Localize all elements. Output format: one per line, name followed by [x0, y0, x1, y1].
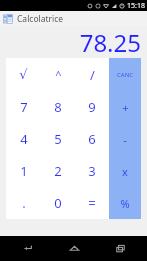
button[interactable]: ^	[41, 58, 75, 91]
staticText: 3	[88, 162, 96, 180]
staticText: 7	[20, 98, 28, 116]
button[interactable]: Recent apps	[100, 236, 140, 261]
button[interactable]: √	[6, 58, 41, 91]
staticText: 8	[54, 98, 62, 116]
button[interactable]: 6	[75, 123, 109, 155]
staticText: x	[122, 164, 128, 179]
staticText: =	[88, 194, 96, 212]
staticText: /	[90, 66, 95, 84]
button[interactable]: %	[109, 187, 141, 219]
button[interactable]: =	[75, 187, 109, 219]
button[interactable]: 9	[75, 91, 109, 123]
button[interactable]: 0	[41, 187, 75, 219]
button[interactable]: CANC	[109, 58, 141, 91]
button[interactable]: 7	[6, 91, 41, 123]
staticText: 2	[54, 162, 62, 180]
button[interactable]: x	[109, 155, 141, 187]
button[interactable]: 3	[75, 155, 109, 187]
staticText: ^	[55, 67, 62, 82]
button[interactable]: +	[109, 91, 141, 123]
staticText: CANC	[117, 71, 133, 79]
button[interactable]: Home	[54, 236, 94, 261]
staticText: 15:18	[127, 1, 145, 11]
button[interactable]: 1	[6, 155, 41, 187]
button[interactable]: 5	[41, 123, 75, 155]
staticText: 9	[88, 98, 96, 116]
staticText: %	[120, 196, 130, 211]
button[interactable]: -	[109, 123, 141, 155]
button[interactable]: /	[75, 58, 109, 91]
staticText: 78.25	[79, 26, 141, 58]
staticText: Calcolatrice	[17, 13, 64, 25]
staticText: 1	[20, 162, 28, 180]
button[interactable]: 8	[41, 91, 75, 123]
button[interactable]: 4	[6, 123, 41, 155]
staticText: .	[22, 194, 26, 212]
staticText: 0	[54, 194, 62, 212]
staticText: 6	[88, 130, 96, 148]
staticText: √	[19, 67, 28, 82]
staticText: 5	[54, 130, 62, 148]
button[interactable]: Back	[7, 236, 47, 261]
staticText: 4	[20, 130, 28, 148]
staticText: +	[122, 100, 129, 115]
staticText: -	[123, 132, 127, 147]
button[interactable]: 2	[41, 155, 75, 187]
button[interactable]: .	[6, 187, 41, 219]
